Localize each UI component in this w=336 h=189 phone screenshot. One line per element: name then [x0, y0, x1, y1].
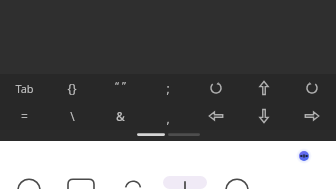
button[interactable]: Undo: [192, 74, 240, 102]
staticText: &: [116, 108, 125, 124]
button[interactable]: Chats: [55, 175, 107, 189]
button[interactable]: =: [0, 102, 48, 130]
staticText: \: [70, 108, 75, 124]
staticText: {}: [67, 80, 77, 96]
button[interactable]: Camera: [107, 175, 159, 189]
button[interactable]: Assistant: [296, 148, 312, 164]
button[interactable]: Move left: [192, 102, 240, 130]
staticText: Tab: [15, 81, 34, 96]
button[interactable]: ;: [144, 74, 192, 102]
button[interactable]: Feed: [159, 175, 211, 189]
staticText: ;: [166, 80, 170, 96]
button[interactable]: Redo: [288, 74, 336, 102]
button[interactable]: Move down: [240, 102, 288, 130]
button[interactable]: Tab: [0, 74, 48, 102]
button[interactable]: Move right: [288, 102, 336, 130]
button[interactable]: {}: [48, 74, 96, 102]
staticText: =: [21, 108, 28, 124]
staticText: ,: [166, 110, 170, 126]
button[interactable]: Home: [3, 175, 55, 189]
button[interactable]: ,: [144, 102, 192, 130]
button[interactable]: Move up: [240, 74, 288, 102]
button[interactable]: \: [48, 102, 96, 130]
button[interactable]: &: [96, 102, 144, 130]
button[interactable]: Profile: [211, 175, 263, 189]
staticText: “ ”: [115, 78, 126, 93]
button[interactable]: “ ”: [96, 74, 144, 102]
